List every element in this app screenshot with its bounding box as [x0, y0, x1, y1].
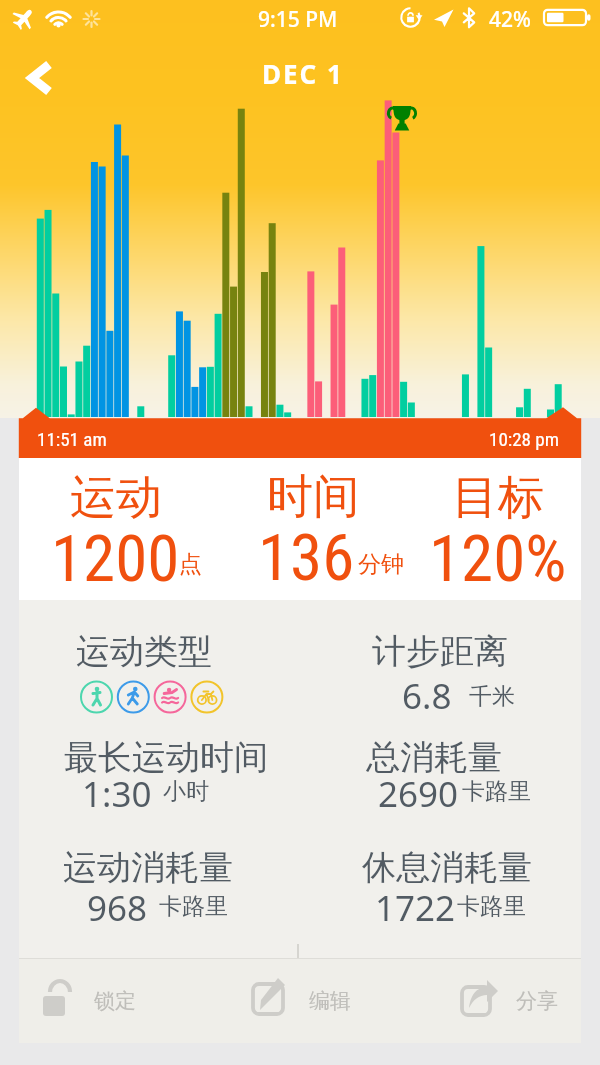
staticText: 锁定 [94, 988, 136, 1014]
staticText: 968 [87, 884, 148, 932]
staticText: 最长运动时间 [16, 736, 316, 779]
staticText: 11:51 am [37, 428, 107, 450]
staticText: 1200 [51, 521, 180, 597]
button[interactable]: Share [449, 968, 569, 1030]
staticText: DEC 1 [262, 56, 344, 91]
staticText: 计步距离 [290, 630, 590, 673]
staticText: 9:15 PM [258, 5, 338, 34]
staticText: 6.8 [402, 672, 452, 720]
staticText: 编辑 [309, 988, 351, 1014]
staticText: 运动类型 [0, 630, 294, 673]
staticText: 目标 [452, 469, 544, 527]
staticText: 时间 [267, 468, 359, 526]
staticText: 1:30 [82, 770, 152, 818]
staticText: 120% [429, 521, 567, 597]
staticText: 卡路里 [457, 892, 526, 921]
staticText: 千米 [469, 682, 515, 711]
staticText: 点 [179, 550, 202, 579]
staticText: 42% [489, 5, 531, 34]
staticText: 1722 [375, 884, 456, 932]
button[interactable]: Lock [30, 968, 150, 1030]
staticText: 分钟 [358, 550, 404, 579]
staticText: 卡路里 [462, 777, 531, 806]
staticText: 小时 [163, 777, 209, 806]
button[interactable]: Back [16, 52, 66, 102]
staticText: 136 [258, 520, 355, 596]
staticText: 2690 [378, 770, 459, 818]
staticText: 总消耗量 [284, 736, 584, 779]
staticText: 分享 [516, 988, 558, 1014]
staticText: 卡路里 [159, 892, 228, 921]
staticText: 运动消耗量 [0, 846, 298, 889]
staticText: 运动 [70, 469, 162, 527]
staticText: 10:28 pm [489, 428, 559, 450]
button[interactable]: Edit [240, 968, 360, 1030]
staticText: 休息消耗量 [297, 846, 597, 889]
